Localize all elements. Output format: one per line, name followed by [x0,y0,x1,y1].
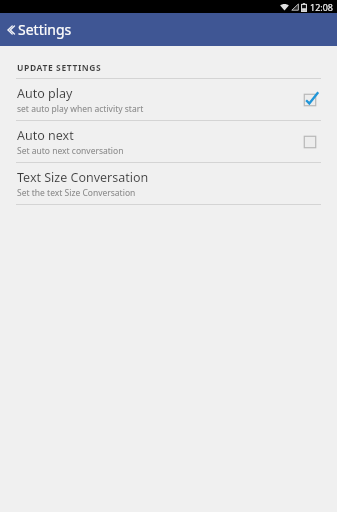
button[interactable]: Auto play [0,79,337,120]
staticText: 12:08 [310,1,334,13]
staticText: Auto play [17,85,73,102]
staticText: UPDATE SETTINGS [17,62,102,74]
staticText: set auto play when activity start [17,103,144,115]
staticText: Auto next [17,127,74,144]
staticText: Text Size Conversation [17,169,149,186]
staticText: Set auto next conversation [17,145,124,157]
button[interactable]: Back [0,13,337,46]
button[interactable]: Text Size Conversation [0,163,337,204]
staticText: Settings [18,20,72,39]
staticText: Set the text Size Conversation [17,187,136,199]
button[interactable]: Unchecked [299,131,321,153]
other: Back [5,23,15,37]
button[interactable]: Auto next [0,121,337,162]
button[interactable]: Checked [299,89,321,111]
